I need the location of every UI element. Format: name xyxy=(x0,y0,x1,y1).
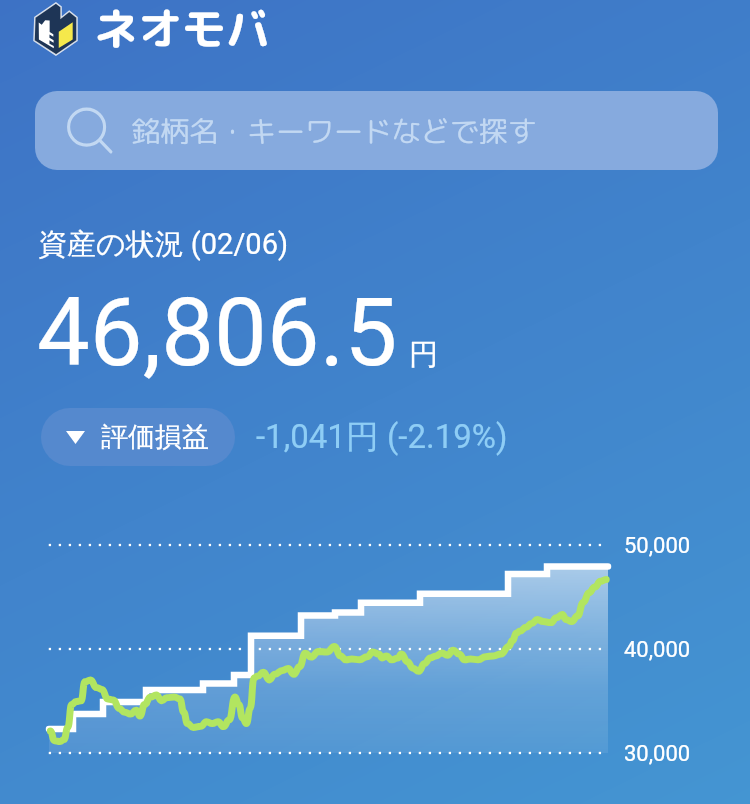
staticText: 30,000 xyxy=(624,741,691,767)
button[interactable]: 評価損益 xyxy=(41,408,235,466)
staticText: 40,000 xyxy=(624,637,691,663)
staticText: ネオモバ xyxy=(94,0,270,54)
staticText: -1,041円 (-2.19%) xyxy=(256,416,508,458)
staticText: 50,000 xyxy=(624,533,691,559)
button[interactable]: Neomoba home xyxy=(34,1,270,57)
button[interactable]: 銘柄名・キーワードなどで探す xyxy=(35,91,718,170)
staticText: 46,806.5 xyxy=(37,278,398,388)
staticText: 円 xyxy=(409,336,438,373)
staticText: 資産の状況 (02/06) xyxy=(38,226,289,263)
staticText: 銘柄名・キーワードなどで探す xyxy=(131,111,538,151)
staticText: 評価損益 xyxy=(101,420,209,454)
